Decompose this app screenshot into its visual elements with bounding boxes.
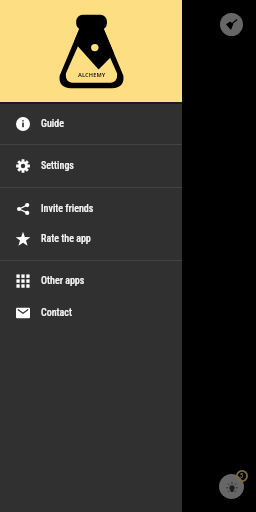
button[interactable]: Settings xyxy=(0,144,182,187)
button[interactable]: Rate the app xyxy=(0,224,182,254)
staticText: ALCHEMY xyxy=(78,71,106,79)
staticText: Settings xyxy=(41,160,74,172)
button[interactable]: Clear xyxy=(220,13,243,36)
staticText: 5 xyxy=(240,472,244,480)
button[interactable]: Guide xyxy=(0,104,182,144)
button[interactable]: Hint xyxy=(219,474,244,499)
button[interactable]: Other apps xyxy=(0,260,182,302)
staticText: Contact xyxy=(41,307,72,319)
button[interactable]: Contact xyxy=(0,297,182,329)
staticText: Invite friends xyxy=(41,203,94,215)
staticText: Rate the app xyxy=(41,233,91,245)
staticText: Guide xyxy=(41,118,64,130)
button[interactable]: Invite friends xyxy=(0,187,182,230)
staticText: Other apps xyxy=(41,275,85,287)
